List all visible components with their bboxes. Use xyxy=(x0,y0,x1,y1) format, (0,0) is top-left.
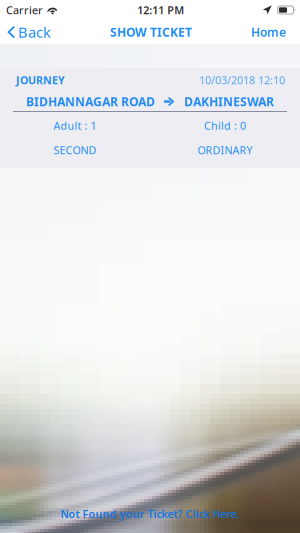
staticText: 10/03/2018 12:10 xyxy=(199,73,285,87)
staticText: Child : 0 xyxy=(204,118,246,133)
staticText: DAKHINESWAR xyxy=(184,93,274,109)
staticText: Adult : 1 xyxy=(53,118,96,133)
staticText: 12:11 PM xyxy=(137,3,184,17)
button[interactable]: Home xyxy=(251,20,300,44)
staticText: Back xyxy=(18,22,51,42)
staticText: Home xyxy=(251,24,286,40)
staticText: Not Found your Ticket? Click Here. xyxy=(60,507,239,521)
staticText: SECOND xyxy=(53,143,96,157)
staticText: SHOW TICKET xyxy=(110,24,192,40)
staticText: JOURNEY xyxy=(16,73,65,87)
staticText: BIDHANNAGAR ROAD xyxy=(26,93,155,109)
staticText: ORDINARY xyxy=(197,143,252,157)
staticText: Carrier xyxy=(6,3,43,17)
button[interactable]: Not Found your Ticket? Click Here. xyxy=(0,507,300,533)
button[interactable]: Back xyxy=(0,18,51,46)
